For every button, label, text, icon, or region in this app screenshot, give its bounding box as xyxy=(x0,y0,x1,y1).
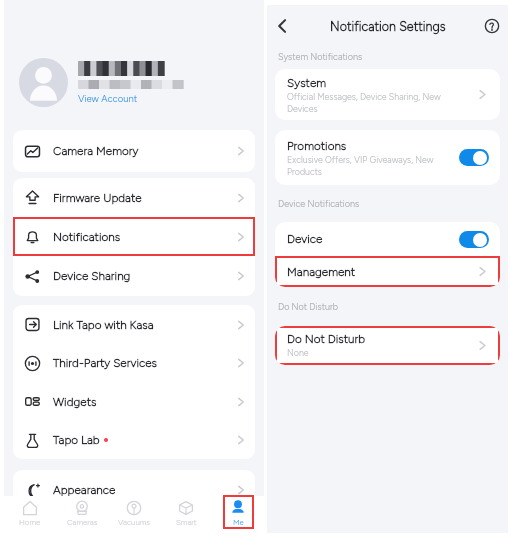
staticText: Camera Memory xyxy=(53,144,139,158)
button[interactable]: System xyxy=(275,69,500,120)
button[interactable]: Help xyxy=(479,13,505,39)
staticText: Cameras xyxy=(67,518,98,527)
staticText: Notification Settings xyxy=(330,19,446,34)
button[interactable]: View Account xyxy=(78,93,138,104)
staticText: Do Not Disturb xyxy=(287,332,366,346)
staticText: Vacuums xyxy=(118,518,150,527)
button[interactable]: Management xyxy=(275,256,500,287)
button[interactable]: Notifications xyxy=(13,217,255,256)
button[interactable]: Link Tapo with Kasa xyxy=(13,305,255,344)
staticText: Official Messages, Device Sharing, New D… xyxy=(287,92,441,114)
button[interactable]: Cameras xyxy=(56,496,108,533)
staticText: Management xyxy=(287,265,356,279)
button[interactable]: Vacuums xyxy=(108,496,160,533)
button[interactable]: Firmware Update xyxy=(13,178,255,217)
staticText: Appearance xyxy=(53,483,116,497)
button[interactable]: View Account xyxy=(4,57,264,107)
staticText: System xyxy=(287,76,327,90)
staticText: Me xyxy=(233,518,244,527)
staticText: Smart xyxy=(176,518,197,527)
button[interactable]: Toggle xyxy=(459,231,489,248)
button[interactable]: Promotions xyxy=(275,130,500,185)
staticText: Device Sharing xyxy=(53,269,131,283)
staticText: Tapo Lab xyxy=(53,433,100,447)
staticText: Device xyxy=(287,232,323,246)
staticText: Widgets xyxy=(53,395,97,409)
button[interactable]: Camera Memory xyxy=(13,130,255,172)
button[interactable]: Third-Party Services xyxy=(13,344,255,382)
staticText: Firmware Update xyxy=(53,191,142,205)
button[interactable]: Toggle xyxy=(459,149,489,166)
button[interactable]: Device Sharing xyxy=(13,256,255,296)
staticText: Promotions xyxy=(287,139,347,153)
staticText: Device Notifications xyxy=(278,198,360,209)
staticText: Home xyxy=(19,518,41,527)
staticText: None xyxy=(287,348,309,359)
staticText: Do Not Disturb xyxy=(278,301,339,312)
staticText: System Notifications xyxy=(278,51,363,62)
staticText: Link Tapo with Kasa xyxy=(53,318,154,332)
button[interactable]: Home xyxy=(4,496,56,533)
button[interactable]: Appearance xyxy=(13,470,255,510)
button[interactable]: Device xyxy=(275,222,500,256)
button[interactable]: Do Not Disturb xyxy=(275,326,500,365)
button[interactable]: Back xyxy=(269,13,295,39)
staticText: Exclusive Offers, VIP Giveaways, New Pro… xyxy=(287,155,434,177)
button[interactable]: Tapo Lab xyxy=(13,421,255,459)
button[interactable]: Widgets xyxy=(13,382,255,421)
button[interactable]: Me xyxy=(212,496,264,533)
staticText: Notifications xyxy=(53,230,121,244)
staticText: Third-Party Services xyxy=(53,356,158,370)
button[interactable]: Smart xyxy=(160,496,212,533)
